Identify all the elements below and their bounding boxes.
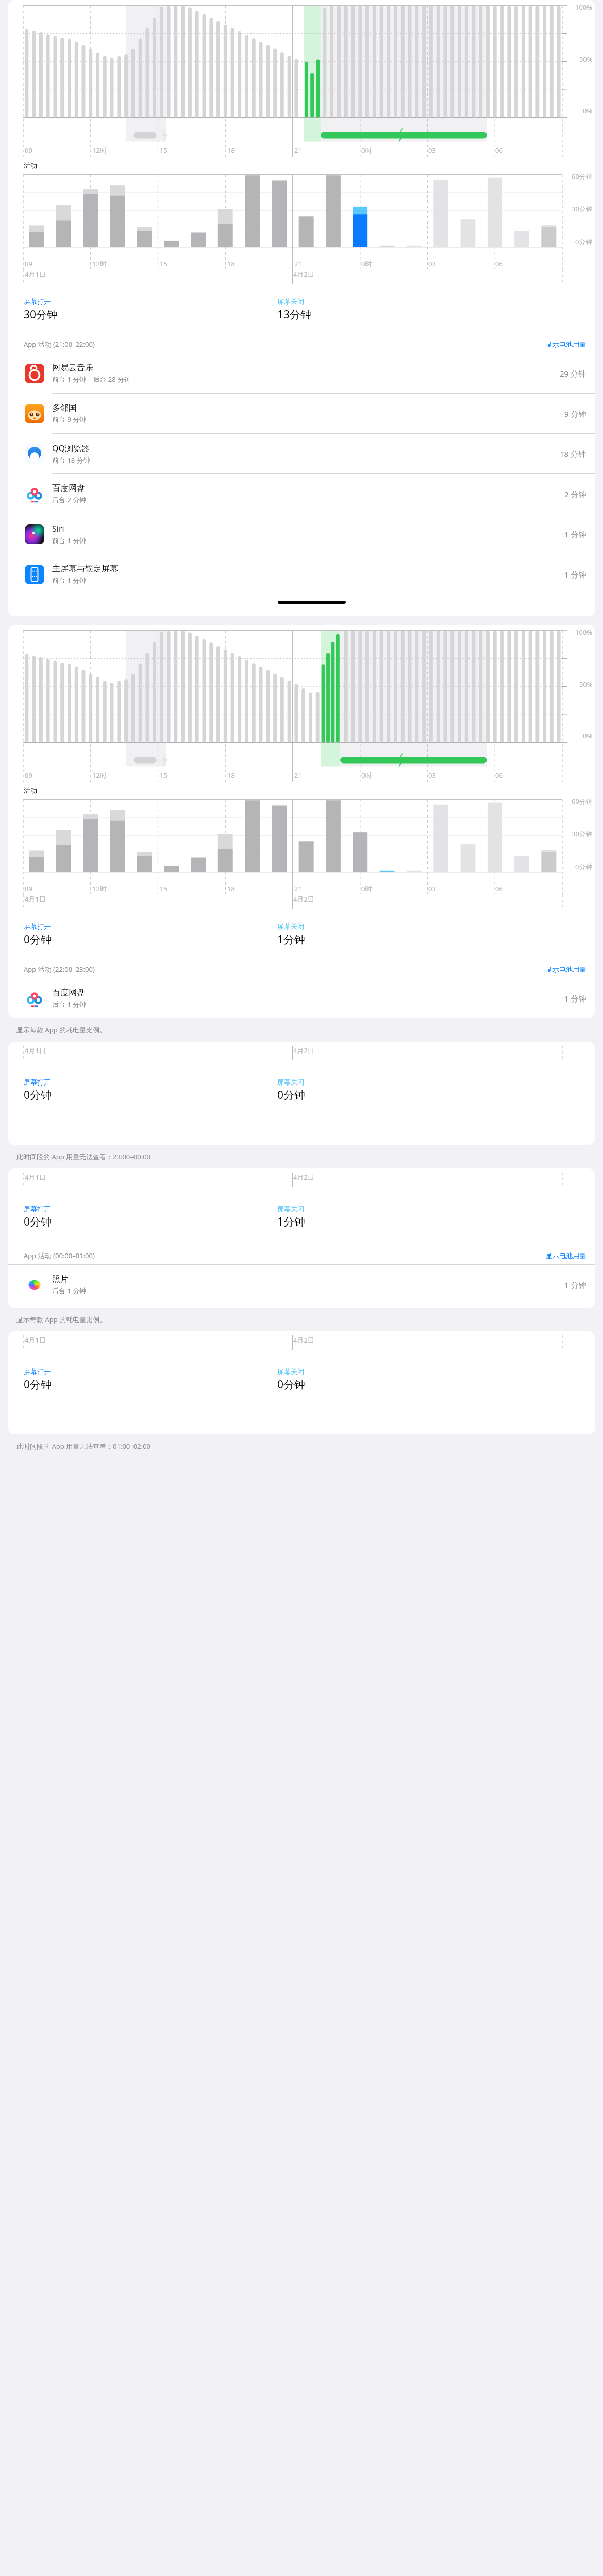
staticText: 1分钟 (277, 932, 306, 947)
button[interactable]: 主屏幕与锁定屏幕 (8, 554, 595, 594)
staticText: 09 (25, 146, 32, 155)
button[interactable]: Siri (8, 514, 595, 554)
button[interactable]: 显示电池用量 (544, 963, 588, 975)
staticText: 100% (575, 3, 593, 12)
staticText: 前台 1 分钟 (52, 536, 87, 545)
staticText: 0分钟 (575, 862, 593, 871)
staticText: 显示每款 App 的耗电量比例。 (16, 1315, 107, 1324)
staticText: 60分钟 (572, 796, 593, 806)
staticText: 18 分钟 (560, 449, 587, 459)
staticText: 50% (579, 680, 593, 689)
staticText: 21 (294, 259, 302, 268)
staticText: 屏幕打开 (24, 1078, 51, 1086)
staticText: Siri (52, 523, 64, 534)
staticText: 屏幕关闭 (277, 1078, 304, 1086)
staticText: 21 (294, 146, 302, 155)
staticText: 0分钟 (277, 1088, 306, 1103)
staticText: 2 分钟 (564, 489, 587, 499)
staticText: 1分钟 (277, 1214, 306, 1229)
staticText: 网易云音乐 (52, 363, 93, 373)
staticText: 屏幕关闭 (277, 1367, 304, 1376)
staticText: 30分钟 (572, 204, 593, 213)
staticText: 屏幕关闭 (277, 297, 304, 306)
button[interactable]: 百度网盘 (8, 978, 595, 1018)
staticText: 06 (495, 259, 503, 268)
staticText: App 活动 (21:00–22:00) (24, 340, 95, 349)
staticText: 12时 (92, 146, 107, 155)
staticText: 前台 1 分钟 – 后台 28 分钟 (52, 375, 131, 384)
staticText: 18 (227, 259, 235, 268)
button[interactable]: 显示电池用量 (544, 338, 588, 350)
button[interactable]: 多邻国 (8, 394, 595, 434)
staticText: 百度网盘 (52, 988, 85, 998)
staticText: 60分钟 (572, 172, 593, 181)
staticText: 15 (160, 146, 167, 155)
button[interactable]: 百度网盘 (8, 474, 595, 514)
staticText: 29 分钟 (560, 368, 587, 379)
staticText: 13分钟 (277, 307, 312, 322)
staticText: 4月1日 (25, 1173, 46, 1182)
button[interactable]: 照片 (8, 1265, 595, 1304)
staticText: 0分钟 (24, 1214, 52, 1229)
staticText: 活动 (24, 786, 37, 794)
staticText: 4月2日 (293, 269, 314, 279)
staticText: 03 (428, 146, 436, 155)
staticText: App 活动 (22:00–23:00) (24, 964, 95, 974)
staticText: 9 分钟 (564, 409, 587, 419)
staticText: 4月1日 (25, 1335, 46, 1345)
staticText: 1 分钟 (564, 529, 587, 539)
staticText: 12时 (92, 259, 107, 268)
staticText: 18 (227, 771, 235, 780)
staticText: 屏幕打开 (24, 1205, 51, 1213)
staticText: 06 (495, 884, 503, 893)
staticText: 4月1日 (25, 269, 46, 279)
staticText: 30分钟 (572, 829, 593, 838)
staticText: 03 (428, 884, 436, 893)
staticText: 0分钟 (24, 932, 52, 947)
staticText: 1 分钟 (564, 569, 587, 580)
staticText: 后台 2 分钟 (52, 495, 87, 504)
staticText: 18 (227, 146, 235, 155)
staticText: 屏幕关闭 (277, 922, 304, 930)
staticText: 06 (495, 771, 503, 780)
staticText: 03 (428, 259, 436, 268)
staticText: 18 (227, 884, 235, 893)
staticText: 4月2日 (293, 1046, 314, 1055)
staticText: 50% (579, 55, 593, 64)
staticText: 4月2日 (293, 894, 314, 904)
staticText: 4月1日 (25, 894, 46, 904)
staticText: 显示每款 App 的耗电量比例。 (16, 1025, 107, 1035)
staticText: 06 (495, 146, 503, 155)
staticText: 4月2日 (293, 1173, 314, 1182)
button[interactable]: 网易云音乐 (8, 353, 595, 394)
staticText: 0% (583, 106, 593, 115)
staticText: 屏幕打开 (24, 297, 51, 306)
staticText: 主屏幕与锁定屏幕 (52, 564, 118, 574)
staticText: 1 分钟 (564, 1280, 587, 1290)
staticText: 100% (575, 628, 593, 637)
staticText: 屏幕打开 (24, 922, 51, 930)
staticText: 0分钟 (24, 1377, 52, 1392)
staticText: 照片 (52, 1274, 69, 1284)
staticText: 03 (428, 771, 436, 780)
staticText: 21 (294, 771, 302, 780)
staticText: 09 (25, 259, 32, 268)
staticText: 0分钟 (575, 237, 593, 246)
staticText: 显示电池用量 (546, 1251, 586, 1260)
button[interactable]: QQ浏览器 (8, 434, 595, 474)
staticText: 12时 (92, 771, 107, 780)
staticText: 屏幕打开 (24, 1367, 51, 1376)
button[interactable]: 显示电池用量 (544, 1250, 588, 1261)
staticText: 屏幕关闭 (277, 1205, 304, 1213)
staticText: 15 (160, 771, 167, 780)
staticText: 活动 (24, 161, 37, 170)
staticText: 30分钟 (24, 307, 58, 322)
staticText: 此时间段的 App 用量无法查看：01:00–02:00 (16, 1442, 151, 1451)
staticText: QQ浏览器 (52, 443, 90, 454)
staticText: 百度网盘 (52, 483, 85, 494)
staticText: 前台 18 分钟 (52, 455, 90, 465)
staticText: 15 (160, 884, 167, 893)
staticText: 前台 1 分钟 (52, 575, 87, 585)
staticText: 15 (160, 259, 167, 268)
staticText: 0时 (361, 884, 372, 893)
